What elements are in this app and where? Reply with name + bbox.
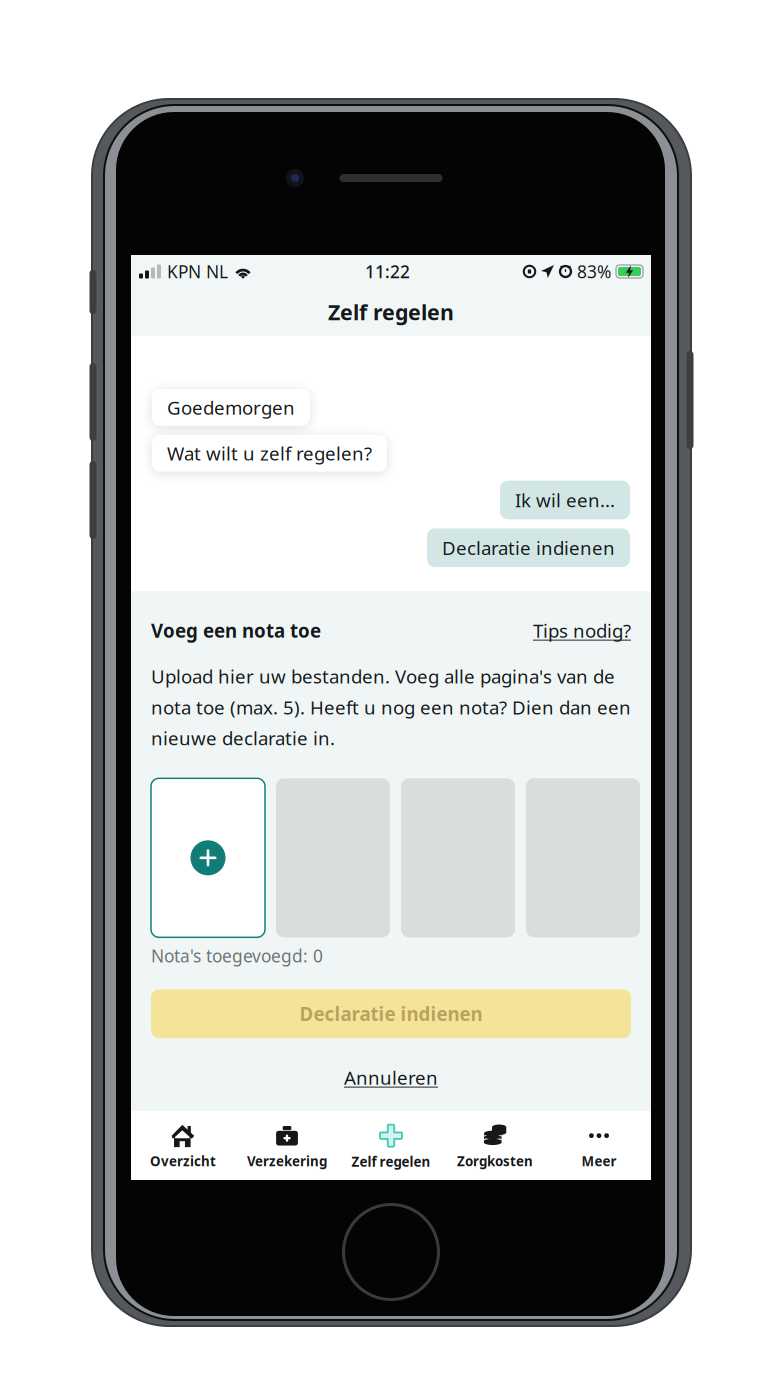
staticText: 11:22 [365, 260, 410, 283]
button[interactable]: Zorgkosten [443, 1112, 547, 1179]
staticText: Zorgkosten [457, 1152, 533, 1170]
button[interactable]: Tips nodig? [533, 618, 631, 643]
staticText: Tips nodig? [533, 618, 631, 643]
button[interactable]: Zelf regelen [339, 1112, 443, 1179]
staticText: Voeg een nota toe [151, 618, 321, 643]
staticText: Declaratie indienen [299, 1001, 482, 1026]
staticText: 83% [577, 260, 611, 283]
staticText: Verzekering [247, 1152, 327, 1170]
staticText: Annuleren [344, 1065, 438, 1090]
staticText: Declaratie indienen [442, 535, 615, 560]
staticText: Wat wilt u zelf regelen? [167, 441, 372, 466]
staticText: Upload hier uw bestanden. Voeg alle pagi… [151, 664, 631, 750]
button[interactable]: Annuleren [151, 1052, 631, 1103]
staticText: KPN NL [167, 260, 228, 283]
staticText: Meer [581, 1152, 616, 1170]
button[interactable]: Declaratie indienen [151, 989, 631, 1038]
staticText: Ik wil een... [515, 488, 615, 512]
button[interactable]: Nota toevoegen [151, 778, 265, 937]
staticText: Nota's toegevoegd: 0 [151, 944, 323, 967]
staticText: Zelf regelen [351, 1153, 430, 1170]
button[interactable]: Overzicht [131, 1112, 235, 1179]
button[interactable]: Verzekering [235, 1112, 339, 1179]
staticText: Overzicht [150, 1152, 216, 1170]
staticText: Zelf regelen [328, 298, 454, 326]
button[interactable]: Meer [547, 1112, 651, 1179]
staticText: Goedemorgen [167, 395, 295, 420]
